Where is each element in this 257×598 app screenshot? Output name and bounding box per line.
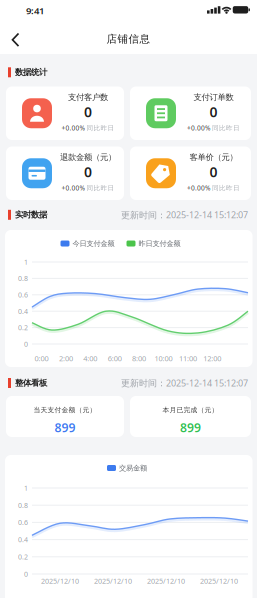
staticText: 0 xyxy=(209,102,217,121)
staticText: 0 xyxy=(209,162,217,181)
button[interactable]: 昨日支付金额 xyxy=(126,239,180,248)
staticText: 0:00 xyxy=(34,353,48,364)
staticText: 0 xyxy=(84,102,92,121)
staticText: 2025/12/10 xyxy=(200,576,238,586)
button[interactable]: 今日支付金额 xyxy=(60,239,114,248)
button[interactable]: 本月已完成（元） xyxy=(130,396,251,437)
staticText: 4:00 xyxy=(83,353,97,364)
staticText: 本月已完成（元） xyxy=(162,406,218,414)
staticText: 0.4 xyxy=(18,535,28,544)
staticText: 今日支付金额 xyxy=(72,239,114,248)
staticText: 同比昨日 xyxy=(212,124,240,132)
staticText: 0 xyxy=(84,162,92,181)
staticText: 0 xyxy=(24,339,28,349)
staticText: 支付客户数 xyxy=(68,92,108,102)
staticText: +0.00% xyxy=(187,123,210,132)
staticText: 2025/12/10 xyxy=(41,576,79,586)
staticText: 同比昨日 xyxy=(86,184,114,192)
button[interactable]: Back xyxy=(0,0,257,598)
button[interactable]: 当天支付金额（元） xyxy=(6,396,124,437)
staticText: 同比昨日 xyxy=(212,184,240,192)
button[interactable]: 支付客户数 xyxy=(6,86,124,140)
staticText: 客单价（元） xyxy=(189,152,237,162)
staticText: 同比昨日 xyxy=(86,124,114,132)
staticText: +0.00% xyxy=(61,183,84,192)
staticText: 当天支付金额（元） xyxy=(33,406,96,414)
staticText: 店铺信息 xyxy=(106,32,150,46)
button[interactable]: 支付订单数 xyxy=(130,86,251,140)
staticText: 899 xyxy=(180,419,201,436)
staticText: 数据统计 xyxy=(15,67,47,78)
staticText: 899 xyxy=(54,419,75,436)
staticText: 0.2 xyxy=(18,552,28,561)
staticText: 1 xyxy=(24,483,28,493)
button[interactable]: 客单价（元） xyxy=(130,146,251,200)
staticText: 2025/12/10 xyxy=(94,576,132,586)
staticText: 2:00 xyxy=(59,353,73,364)
staticText: 9:41 xyxy=(26,4,44,17)
staticText: 6:00 xyxy=(108,353,122,364)
staticText: +0.00% xyxy=(187,183,210,192)
staticText: 交易金额 xyxy=(119,463,147,473)
staticText: 12:00 xyxy=(203,353,221,364)
staticText: 昨日支付金额 xyxy=(138,239,180,248)
staticText: 11:00 xyxy=(179,353,197,364)
staticText: 2025/12/10 xyxy=(147,576,185,586)
staticText: 0.6 xyxy=(18,518,28,527)
staticText: 10:00 xyxy=(154,353,172,364)
staticText: 实时数据 xyxy=(15,209,47,220)
staticText: 支付订单数 xyxy=(193,92,233,102)
staticText: +0.00% xyxy=(61,123,84,132)
staticText: 0.2 xyxy=(18,323,28,332)
staticText: 0.6 xyxy=(18,290,28,299)
button[interactable]: 交易金额 xyxy=(107,463,147,473)
staticText: 退款金额（元） xyxy=(60,152,116,162)
staticText: 整体看板 xyxy=(15,378,47,388)
button[interactable]: 退款金额（元） xyxy=(6,146,124,200)
staticText: 0.8 xyxy=(18,274,28,283)
staticText: 更新时间：2025-12-14 15:12:07 xyxy=(121,209,248,221)
staticText: 0.8 xyxy=(18,500,28,510)
staticText: 更新时间：2025-12-14 15:12:07 xyxy=(121,377,248,389)
staticText: 8:00 xyxy=(132,353,146,364)
staticText: 0 xyxy=(24,569,28,579)
staticText: 0.4 xyxy=(18,306,28,316)
staticText: 1 xyxy=(24,257,28,267)
